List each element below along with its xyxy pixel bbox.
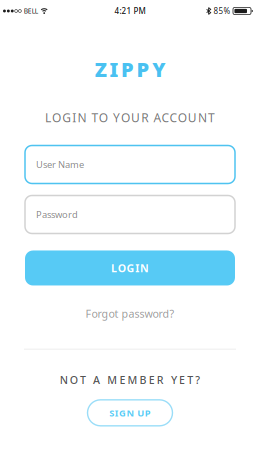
staticText: NOT A MEMBER YET?: [60, 373, 200, 387]
staticText: SIGN UP: [109, 407, 151, 419]
staticText: User Name: [36, 158, 84, 171]
staticText: Password: [36, 208, 78, 221]
staticText: 85%: [213, 6, 230, 16]
staticText: BELL: [24, 7, 38, 15]
button[interactable]: SIGN UP: [87, 400, 172, 426]
button[interactable]: Forgot password?: [85, 306, 174, 321]
button[interactable]: User Name: [25, 145, 235, 183]
staticText: LOGIN: [111, 261, 149, 275]
staticText: ZIPPY: [95, 56, 165, 83]
button[interactable]: Password: [25, 195, 235, 233]
staticText: 4:21 PM: [114, 6, 145, 16]
staticText: LOGIN TO YOUR ACCOUNT: [45, 110, 215, 125]
button[interactable]: LOGIN: [25, 250, 235, 285]
staticText: Forgot password?: [85, 306, 174, 321]
